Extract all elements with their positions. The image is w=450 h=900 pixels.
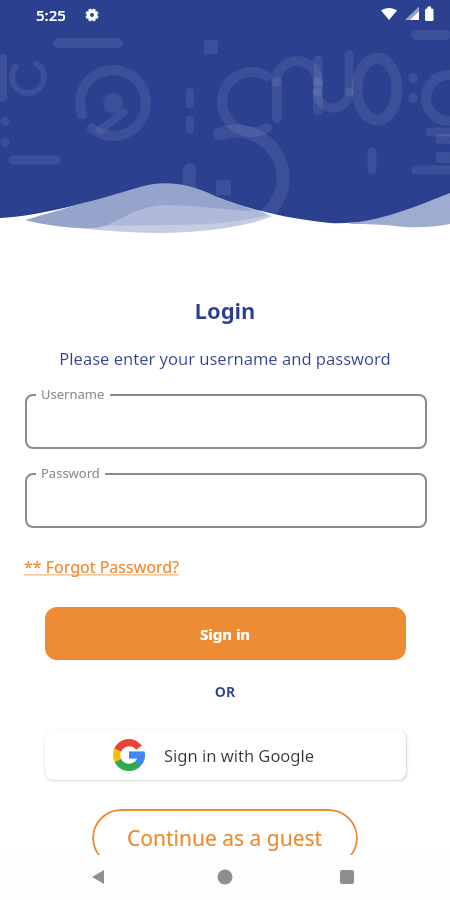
button[interactable]	[25, 473, 427, 528]
button[interactable]: ** Forgot Password?	[24, 556, 179, 578]
staticText: Continue as a guest	[127, 824, 323, 853]
staticText: Login	[0, 295, 450, 325]
button[interactable]	[300, 855, 450, 900]
staticText: Sign in with Google	[164, 744, 315, 766]
staticText: Sign in	[200, 624, 251, 644]
button[interactable]: Continue as a guest	[92, 809, 358, 867]
button[interactable]	[0, 855, 150, 900]
staticText: OR	[0, 682, 450, 701]
button[interactable]	[25, 394, 427, 449]
staticText: Username	[41, 385, 105, 403]
staticText: 5:25	[36, 5, 66, 25]
button[interactable]: Sign in with Google	[45, 730, 406, 780]
button[interactable]	[150, 855, 300, 900]
staticText: Please enter your username and password	[0, 347, 450, 369]
button[interactable]: Sign in	[45, 607, 406, 660]
staticText: Password	[41, 464, 100, 482]
